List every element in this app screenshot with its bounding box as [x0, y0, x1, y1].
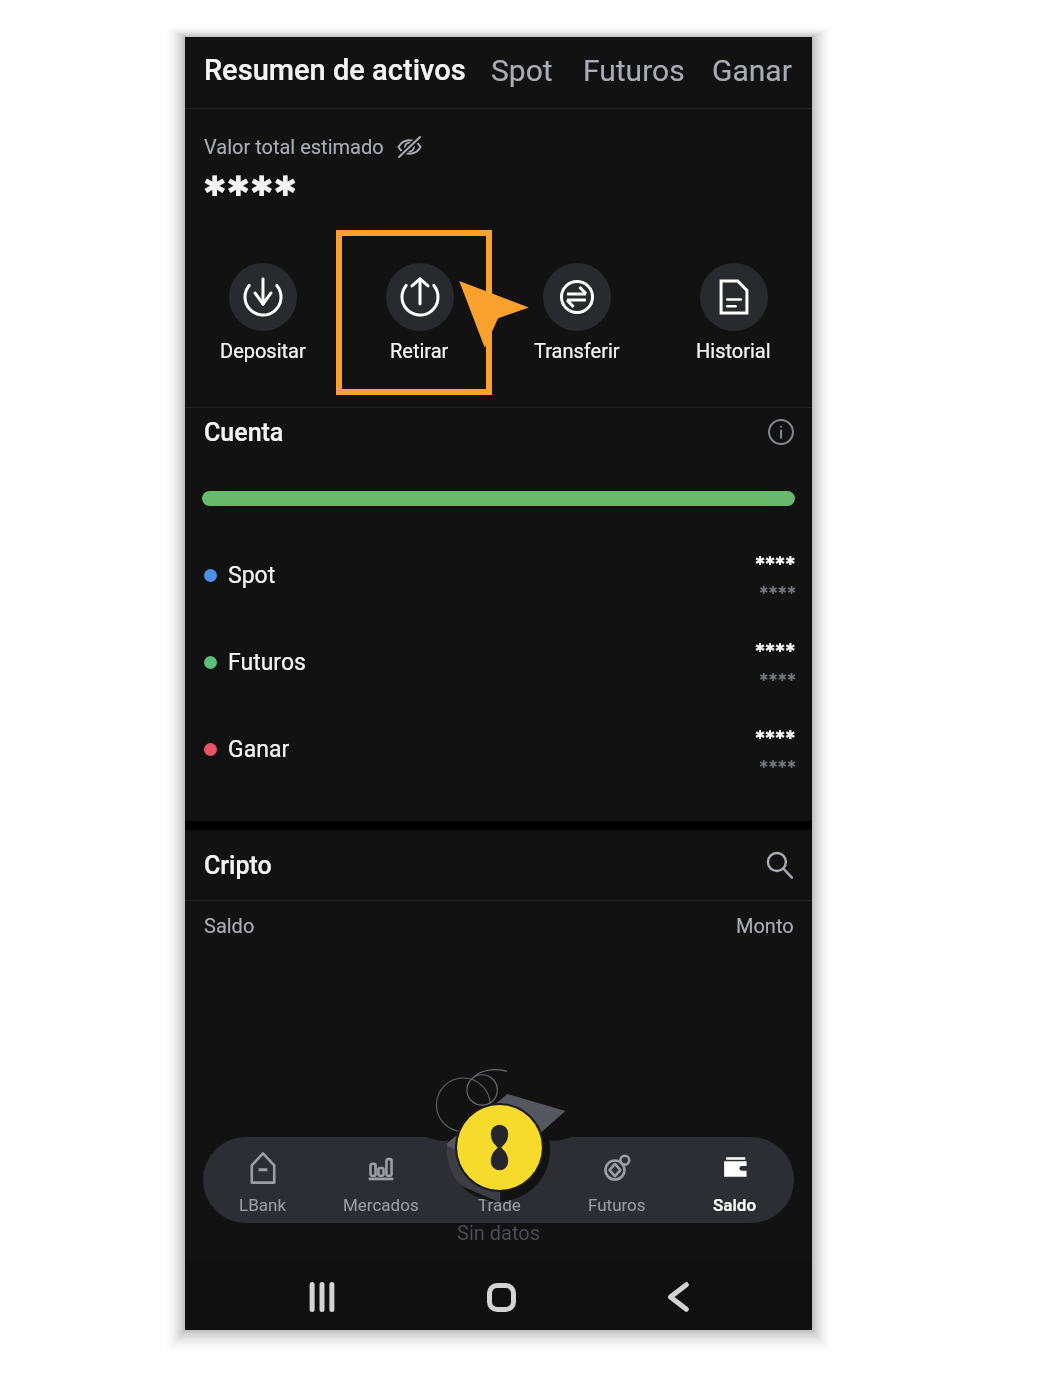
button[interactable]: Depositar	[185, 263, 341, 362]
staticText: Futuros	[588, 1195, 646, 1215]
staticText: Ganar	[228, 736, 290, 763]
button[interactable]: Historial	[655, 263, 812, 362]
staticText: Ganar	[712, 53, 792, 88]
button[interactable]: Mercados	[322, 1137, 440, 1223]
staticText: ✱✱✱✱	[759, 758, 796, 771]
staticText: ✱✱✱✱	[755, 641, 796, 655]
button[interactable]: Saldo	[676, 1137, 794, 1223]
staticText: ✱✱✱✱	[759, 671, 796, 684]
button[interactable]: Retirar	[341, 263, 498, 362]
button[interactable]: LBank	[203, 1137, 322, 1223]
staticText: Spot	[491, 53, 553, 88]
button[interactable]: Ganar	[696, 48, 808, 92]
staticText: Transferir	[534, 339, 620, 362]
staticText: Monto	[736, 914, 794, 937]
button[interactable]: Atras	[656, 1275, 700, 1319]
staticText: Saldo	[713, 1195, 757, 1215]
button[interactable]: Transferir	[498, 263, 655, 362]
button[interactable]: Resumen de activos	[188, 48, 482, 92]
staticText: Cripto	[204, 851, 272, 880]
staticText: Trade	[478, 1195, 521, 1215]
staticText: ✱✱✱✱	[755, 554, 796, 568]
staticText: Valor total estimado	[204, 135, 384, 158]
button[interactable]: Ganar	[204, 709, 796, 789]
staticText: LBank	[239, 1195, 286, 1215]
button[interactable]: Futuros	[204, 622, 796, 702]
button[interactable]: Futuros	[567, 48, 701, 92]
staticText: Futuros	[228, 649, 306, 676]
button[interactable]: Recientes	[300, 1275, 344, 1319]
button[interactable]: Buscar	[764, 850, 794, 880]
staticText: ✱✱✱✱	[203, 170, 297, 203]
button[interactable]: Trade	[440, 1137, 558, 1223]
staticText: Mercados	[343, 1195, 419, 1215]
button[interactable]: Informacion	[768, 419, 794, 445]
staticText: Retirar	[390, 339, 449, 362]
button[interactable]: Inicio	[479, 1275, 523, 1319]
staticText: Cuenta	[204, 418, 284, 447]
button[interactable]: Spot	[475, 48, 569, 92]
staticText: Saldo	[204, 914, 255, 937]
button[interactable]: Mostrar saldo	[397, 134, 422, 159]
staticText: Historial	[696, 339, 771, 362]
staticText: Depositar	[220, 339, 306, 362]
staticText: ✱✱✱✱	[759, 584, 796, 597]
button[interactable]: Futuros	[558, 1137, 676, 1223]
staticText: Sin datos	[457, 1221, 540, 1244]
button[interactable]: Spot	[204, 535, 796, 615]
staticText: ✱✱✱✱	[755, 728, 796, 742]
button[interactable]: Trade	[455, 1103, 544, 1192]
staticText: Resumen de activos	[204, 53, 466, 87]
staticText: Futuros	[583, 53, 685, 88]
staticText: Spot	[228, 562, 276, 589]
